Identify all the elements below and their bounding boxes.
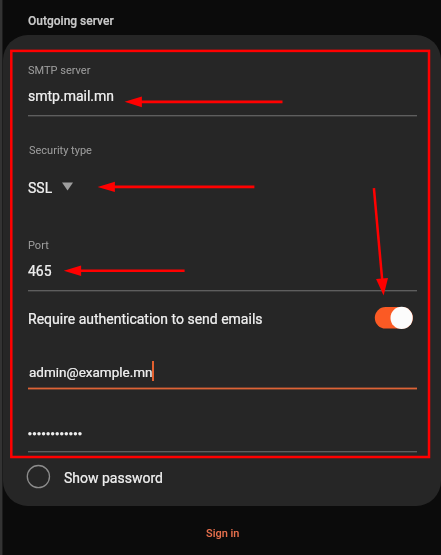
button[interactable]: [14, 352, 424, 390]
staticText: SMTP server: [28, 64, 91, 77]
staticText: Require authentication to send emails: [28, 311, 263, 327]
button[interactable]: Security type dropdown: [14, 140, 424, 198]
staticText: Outgoing server: [28, 14, 114, 28]
staticText: Security type: [29, 144, 92, 157]
button[interactable]: Outgoing server: [0, 0, 441, 35]
staticText: Show password: [64, 470, 163, 486]
button[interactable]: [20, 460, 180, 494]
staticText: Sign in: [206, 527, 240, 540]
staticText: Port: [28, 239, 49, 252]
staticText: SSL: [28, 180, 53, 196]
button[interactable]: [14, 56, 424, 114]
button[interactable]: [14, 410, 424, 450]
staticText: admin@example.mn: [29, 364, 153, 380]
button[interactable]: [14, 296, 424, 340]
button[interactable]: Require authentication toggle: [374, 303, 414, 332]
staticText: 465: [28, 263, 52, 279]
staticText: smtp.mail.mn: [28, 88, 115, 104]
button[interactable]: [14, 232, 424, 290]
button[interactable]: Sign in: [152, 518, 293, 548]
